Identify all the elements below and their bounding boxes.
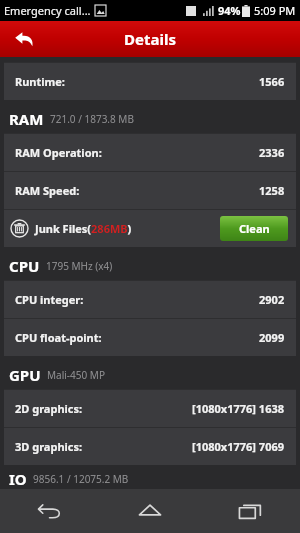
staticText: Clean (239, 221, 270, 236)
staticText: 5:09 PM (254, 3, 296, 18)
staticText: GPU (9, 365, 41, 385)
button[interactable]: CPU integer: (4, 280, 296, 318)
staticText: Runtime: (15, 74, 65, 89)
staticText: CPU integer: (15, 292, 84, 307)
staticText: CPU float-point: (15, 330, 102, 345)
button[interactable]: RAM Speed: (4, 171, 296, 209)
staticText: RAM Operation: (15, 145, 102, 160)
staticText: RAM (9, 109, 44, 129)
staticText: 2099 (259, 330, 285, 345)
staticText: Emergency call... (4, 3, 91, 18)
staticText: 3D graphics: (15, 439, 83, 454)
button[interactable]: Clean (220, 216, 288, 241)
button[interactable]: Junk Files(286MB) (4, 209, 296, 247)
staticText: 721.0 / 1873.8 MB (50, 112, 134, 126)
staticText: RAM Speed: (15, 183, 80, 198)
staticText: 2902 (259, 292, 285, 307)
staticText: IO (9, 469, 27, 489)
button[interactable]: Home (100, 489, 200, 533)
staticText: 1566 (259, 74, 285, 89)
button[interactable]: Back (0, 21, 48, 57)
button[interactable]: 2D graphics: (4, 389, 296, 427)
staticText: [1080x1776] 7069 (192, 439, 285, 454)
button[interactable]: Back (0, 489, 100, 533)
staticText: CPU (9, 256, 40, 276)
staticText: 2336 (259, 145, 285, 160)
staticText: 1795 MHz (x4) (46, 259, 113, 273)
button[interactable]: Runtime: (4, 62, 296, 100)
staticText: 2D graphics: (15, 401, 83, 416)
button[interactable]: 3D graphics: (4, 427, 296, 465)
staticText: Mali-450 MP (47, 368, 105, 382)
staticText: [1080x1776] 1638 (192, 401, 285, 416)
staticText: Junk Files(286MB) (35, 221, 132, 236)
button[interactable]: CPU float-point: (4, 318, 296, 356)
staticText: 1258 (259, 183, 285, 198)
button[interactable]: Recent apps (200, 489, 300, 533)
staticText: Details (124, 29, 176, 49)
staticText: 94% (218, 3, 241, 18)
staticText: 9856.1 / 12075.2 MB (33, 472, 129, 486)
button[interactable]: RAM Operation: (4, 133, 296, 171)
